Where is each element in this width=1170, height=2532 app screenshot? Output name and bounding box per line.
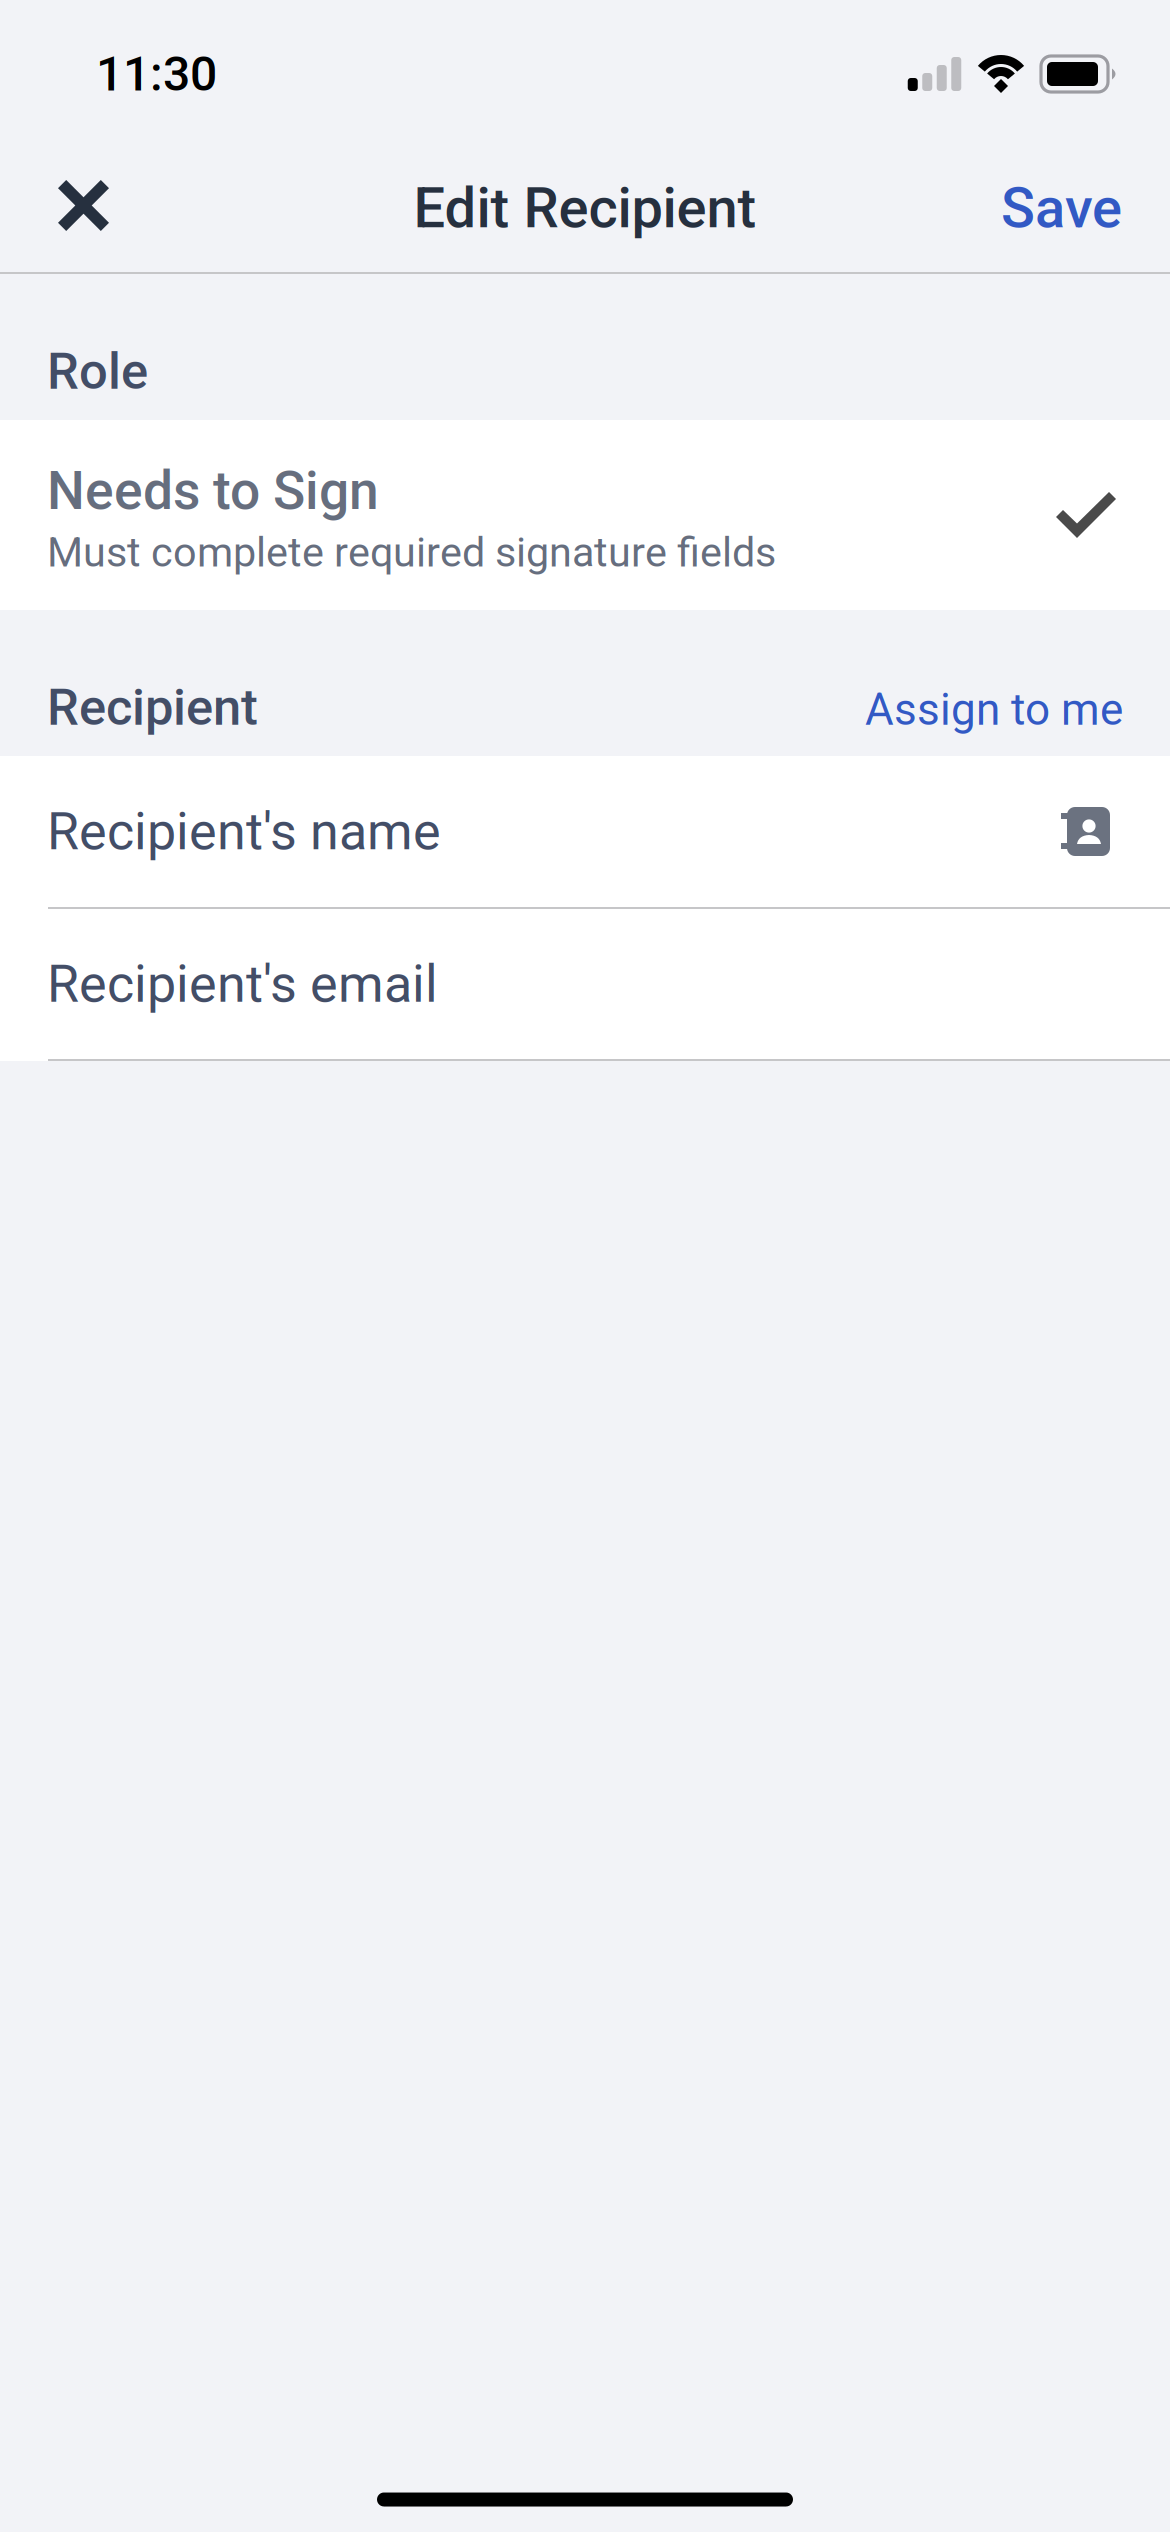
staticText: Recipient's email xyxy=(47,953,438,1014)
staticText: Edit Recipient xyxy=(413,175,756,241)
staticText: 11:30 xyxy=(96,46,217,102)
button[interactable]: Needs to Sign xyxy=(0,420,1170,610)
staticText: Must complete required signature fields xyxy=(47,528,776,576)
staticText: Assign to me xyxy=(865,684,1123,735)
staticText: Recipient xyxy=(47,678,258,737)
button[interactable]: Assign to me xyxy=(865,684,1123,735)
staticText: Save xyxy=(1001,175,1122,241)
staticText: Needs to Sign xyxy=(47,459,379,522)
staticText: Role xyxy=(47,342,148,401)
button[interactable]: Close xyxy=(0,134,139,264)
staticText: Recipient's name xyxy=(47,801,441,862)
button[interactable]: Recipient's email xyxy=(0,909,1170,1059)
button[interactable]: Save xyxy=(971,132,1170,266)
button[interactable]: Choose from contacts xyxy=(1041,756,1170,907)
button[interactable]: Recipient's name xyxy=(0,756,1041,907)
